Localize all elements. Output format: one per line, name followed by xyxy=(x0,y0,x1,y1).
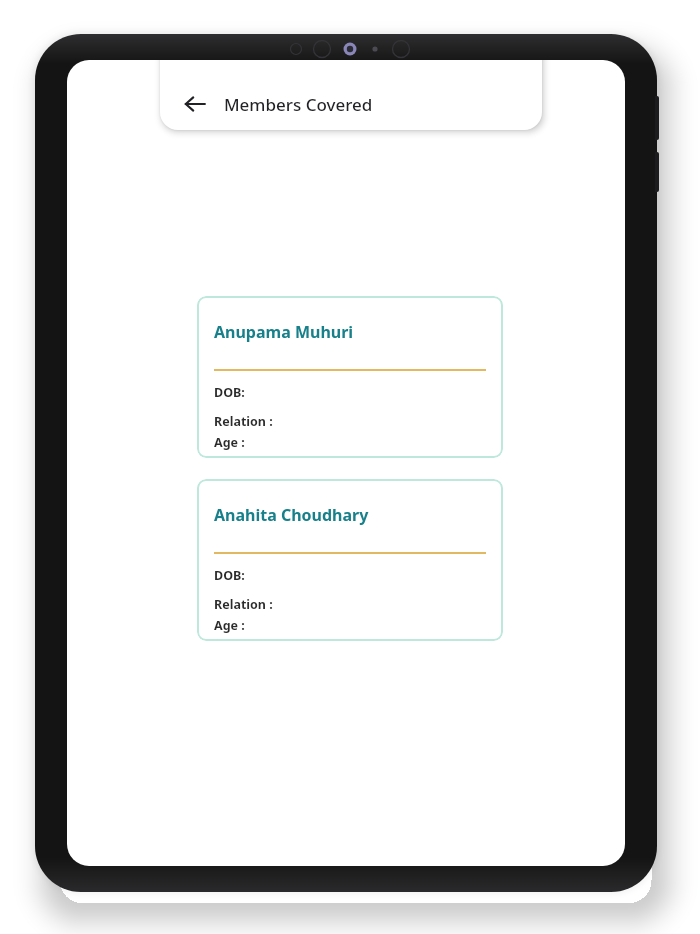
button[interactable]: Back xyxy=(178,87,212,121)
staticText: Age : xyxy=(214,434,245,451)
button[interactable]: Anahita Choudhary xyxy=(197,479,503,641)
staticText: Age : xyxy=(214,617,245,634)
staticText: Anupama Muhuri xyxy=(214,321,354,343)
staticText: DOB: xyxy=(214,384,245,401)
staticText: Anahita Choudhary xyxy=(214,504,369,526)
staticText: Relation : xyxy=(214,413,273,430)
button[interactable]: Anupama Muhuri xyxy=(197,296,503,458)
staticText: Members Covered xyxy=(224,93,373,116)
staticText: DOB: xyxy=(214,567,245,584)
staticText: Relation : xyxy=(214,596,273,613)
